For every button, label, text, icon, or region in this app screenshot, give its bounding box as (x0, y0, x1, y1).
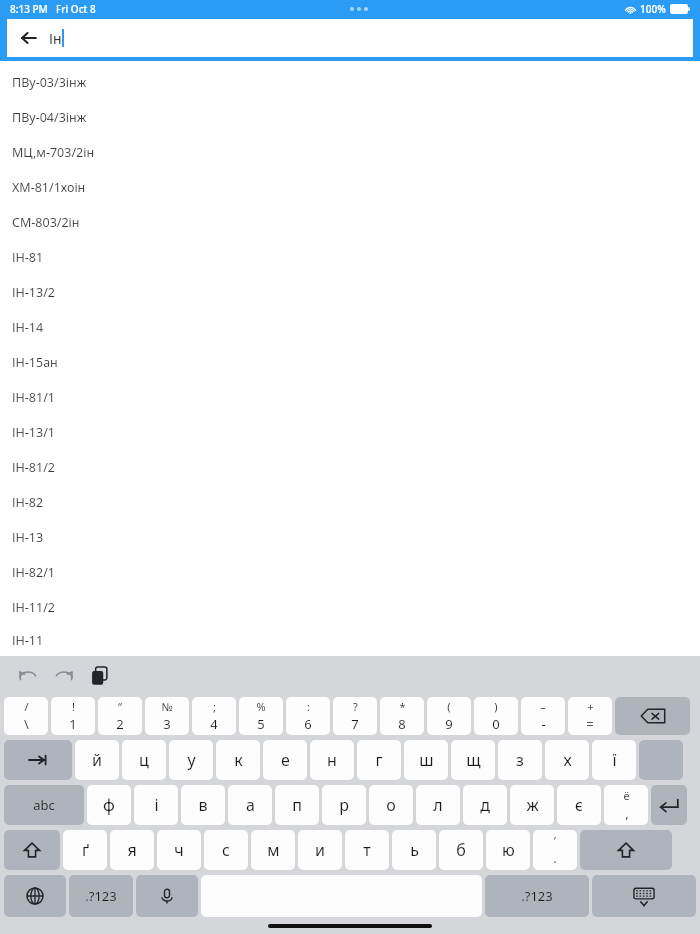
button[interactable]: к (216, 740, 260, 780)
button[interactable]: : (286, 697, 330, 735)
button[interactable]: Copy (86, 662, 114, 690)
button[interactable]: № (145, 697, 189, 735)
button[interactable]: з (498, 740, 542, 780)
button[interactable]: ф (87, 785, 131, 825)
button[interactable]: в (181, 785, 225, 825)
button[interactable]: Enter (651, 785, 687, 825)
button[interactable]: ! (51, 697, 95, 735)
button[interactable]: abc (4, 785, 84, 825)
button[interactable]: ПВу-03/3інж (0, 65, 700, 100)
button[interactable]: ґ (63, 830, 107, 870)
button[interactable]: .?123 (69, 875, 133, 917)
button[interactable]: * (380, 697, 424, 735)
button[interactable]: ПВу-04/3інж (0, 100, 700, 135)
staticText: ІН-81/2 (12, 459, 55, 476)
button[interactable]: г (357, 740, 401, 780)
button[interactable]: с (204, 830, 248, 870)
button[interactable]: ІН-13/1 (0, 415, 700, 450)
staticText: : (307, 699, 310, 714)
button[interactable]: ж (510, 785, 554, 825)
staticText: Fri Oct 8 (56, 2, 96, 16)
button[interactable]: ІН-81/2 (0, 450, 700, 485)
button[interactable]: р (322, 785, 366, 825)
staticText: в (198, 794, 208, 816)
button[interactable]: є (557, 785, 601, 825)
button[interactable]: ) (474, 697, 518, 735)
button[interactable]: ш (404, 740, 448, 780)
button[interactable]: н (310, 740, 354, 780)
staticText: ж (526, 794, 539, 816)
button[interactable] (639, 740, 683, 780)
button[interactable]: ’ (533, 830, 577, 870)
button[interactable]: а (228, 785, 272, 825)
button[interactable]: ІН-11/2 (0, 590, 700, 625)
button[interactable]: ІН-81/1 (0, 380, 700, 415)
button[interactable]: е (263, 740, 307, 780)
button[interactable]: Back (17, 26, 41, 50)
button[interactable]: і (134, 785, 178, 825)
button[interactable]: Shift (580, 830, 672, 870)
button[interactable]: щ (451, 740, 495, 780)
button[interactable]: о (369, 785, 413, 825)
button[interactable]: т (345, 830, 389, 870)
button[interactable]: б (439, 830, 483, 870)
button[interactable]: Change language (4, 875, 66, 917)
button[interactable]: ІН-82/1 (0, 555, 700, 590)
staticText: 8:13 PM (10, 2, 48, 16)
staticText: СМ-803/2ін (12, 214, 80, 231)
staticText: * (399, 699, 406, 714)
button[interactable]: м (251, 830, 295, 870)
button[interactable]: – (521, 697, 565, 735)
button[interactable]: ІН-14 (0, 310, 700, 345)
button[interactable]: ц (122, 740, 166, 780)
button[interactable]: .?123 (485, 875, 589, 917)
button[interactable]: СМ-803/2ін (0, 205, 700, 240)
button[interactable]: ї (592, 740, 636, 780)
button[interactable]: % (239, 697, 283, 735)
staticText: ф (103, 794, 115, 816)
button[interactable]: л (416, 785, 460, 825)
button[interactable]: х (545, 740, 589, 780)
button[interactable]: Voice input (136, 875, 198, 917)
button[interactable]: ю (486, 830, 530, 870)
button[interactable]: ч (157, 830, 201, 870)
staticText: ї (612, 749, 617, 771)
button[interactable]: я (110, 830, 154, 870)
button[interactable]: Tab (4, 740, 72, 780)
staticText: ІН-11/2 (12, 599, 55, 616)
staticText: ; (213, 699, 216, 714)
button[interactable]: ІН-15ан (0, 345, 700, 380)
button[interactable]: ІН-81 (0, 240, 700, 275)
button[interactable]: Undo (14, 662, 42, 690)
button[interactable]: и (298, 830, 342, 870)
button[interactable]: Shift (4, 830, 60, 870)
button[interactable]: Hide keyboard (592, 875, 696, 917)
button[interactable]: ё (604, 785, 648, 825)
button[interactable]: й (75, 740, 119, 780)
staticText: - (541, 715, 546, 733)
staticText: й (92, 749, 102, 771)
button[interactable]: Back (7, 19, 693, 57)
button[interactable]: у (169, 740, 213, 780)
button[interactable]: ? (333, 697, 377, 735)
button[interactable]: ІН-13/2 (0, 275, 700, 310)
button[interactable]: д (463, 785, 507, 825)
button[interactable]: + (568, 697, 612, 735)
staticText: б (456, 839, 466, 861)
button[interactable]: Redo (50, 662, 78, 690)
button[interactable]: ІН-13 (0, 520, 700, 555)
button[interactable]: ХМ-81/1хоін (0, 170, 700, 205)
button[interactable]: п (275, 785, 319, 825)
staticText: ІН-81 (12, 249, 44, 266)
button[interactable]: Backspace (615, 697, 690, 735)
button[interactable]: / (4, 697, 48, 735)
button[interactable]: МЦ,м-703/2ін (0, 135, 700, 170)
button[interactable]: ( (427, 697, 471, 735)
button[interactable]: ; (192, 697, 236, 735)
button[interactable]: ь (392, 830, 436, 870)
staticText: ґ (82, 839, 89, 861)
button[interactable]: ІН-11 (0, 625, 700, 656)
button[interactable]: ІН-82 (0, 485, 700, 520)
button[interactable]: “ (98, 697, 142, 735)
